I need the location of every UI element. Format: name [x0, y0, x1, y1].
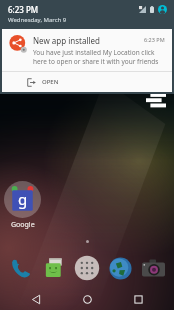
button[interactable]: User profile	[158, 5, 167, 14]
button[interactable]: Back	[21, 289, 51, 310]
button[interactable]: Camera	[138, 253, 168, 283]
button[interactable]: Google folder	[4, 181, 41, 218]
button[interactable]: Home	[72, 289, 102, 310]
staticText: New app installed	[33, 35, 144, 46]
staticText: Google	[11, 220, 35, 230]
button[interactable]: Messages	[39, 253, 69, 283]
button[interactable]: Clear all notifications	[144, 88, 168, 112]
button[interactable]: OPEN	[2, 72, 172, 92]
staticText: 6:23 PM	[144, 36, 165, 43]
staticText: OPEN	[42, 78, 59, 86]
staticText: 6:23 PM	[8, 4, 39, 15]
button[interactable]: Phone	[6, 253, 36, 283]
staticText: Wednesday, March 9	[8, 16, 67, 24]
staticText: You have just installed My Location clic…	[33, 48, 165, 66]
button[interactable]: New app installed notification	[2, 29, 172, 92]
button[interactable]: Recent apps	[123, 289, 153, 310]
button[interactable]: Apps	[72, 253, 102, 283]
button[interactable]: Browser	[105, 253, 135, 283]
staticText: g	[18, 189, 28, 209]
